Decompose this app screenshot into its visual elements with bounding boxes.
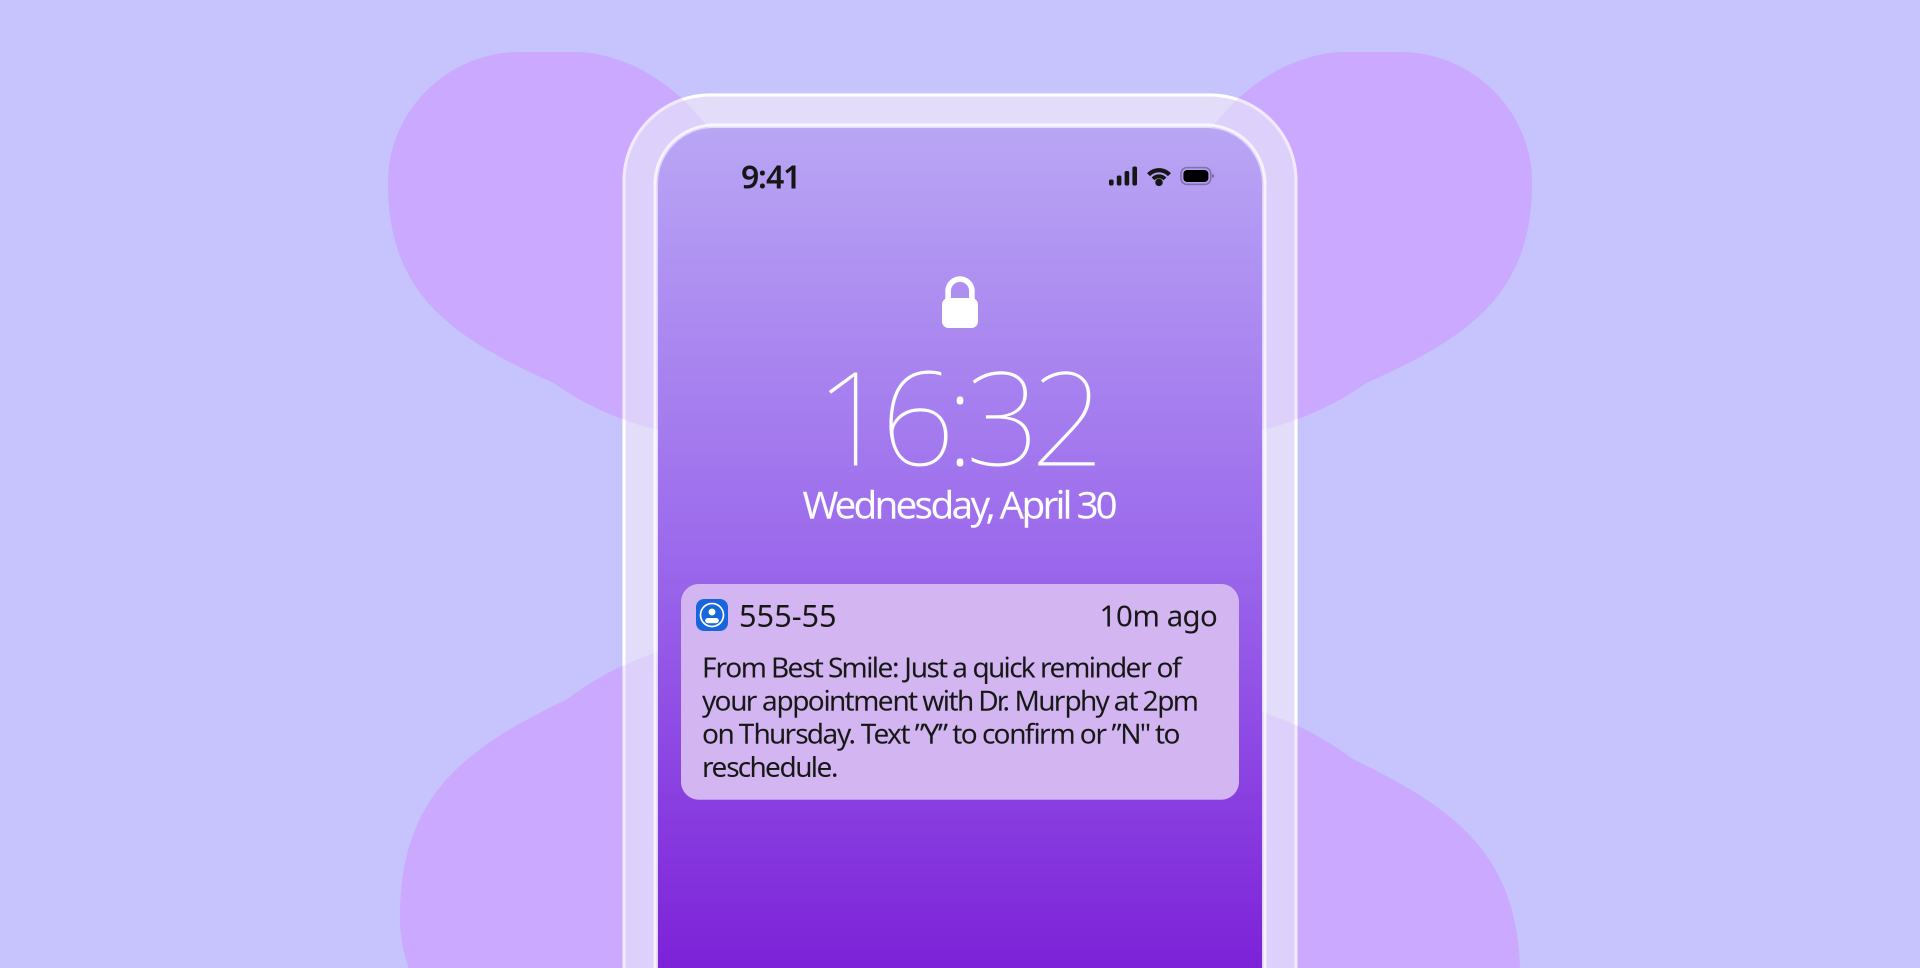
staticText: 9:41 <box>741 155 801 197</box>
staticText: Wednesday, April 30 <box>802 478 1117 529</box>
staticText: 555-55 <box>739 595 837 635</box>
staticText: From Best Smile: Just a quick reminder o… <box>702 648 1199 785</box>
button[interactable]: 555-55 <box>681 584 1239 800</box>
staticText: 10m ago <box>1099 595 1218 634</box>
staticText: 16:32 <box>815 328 1104 501</box>
